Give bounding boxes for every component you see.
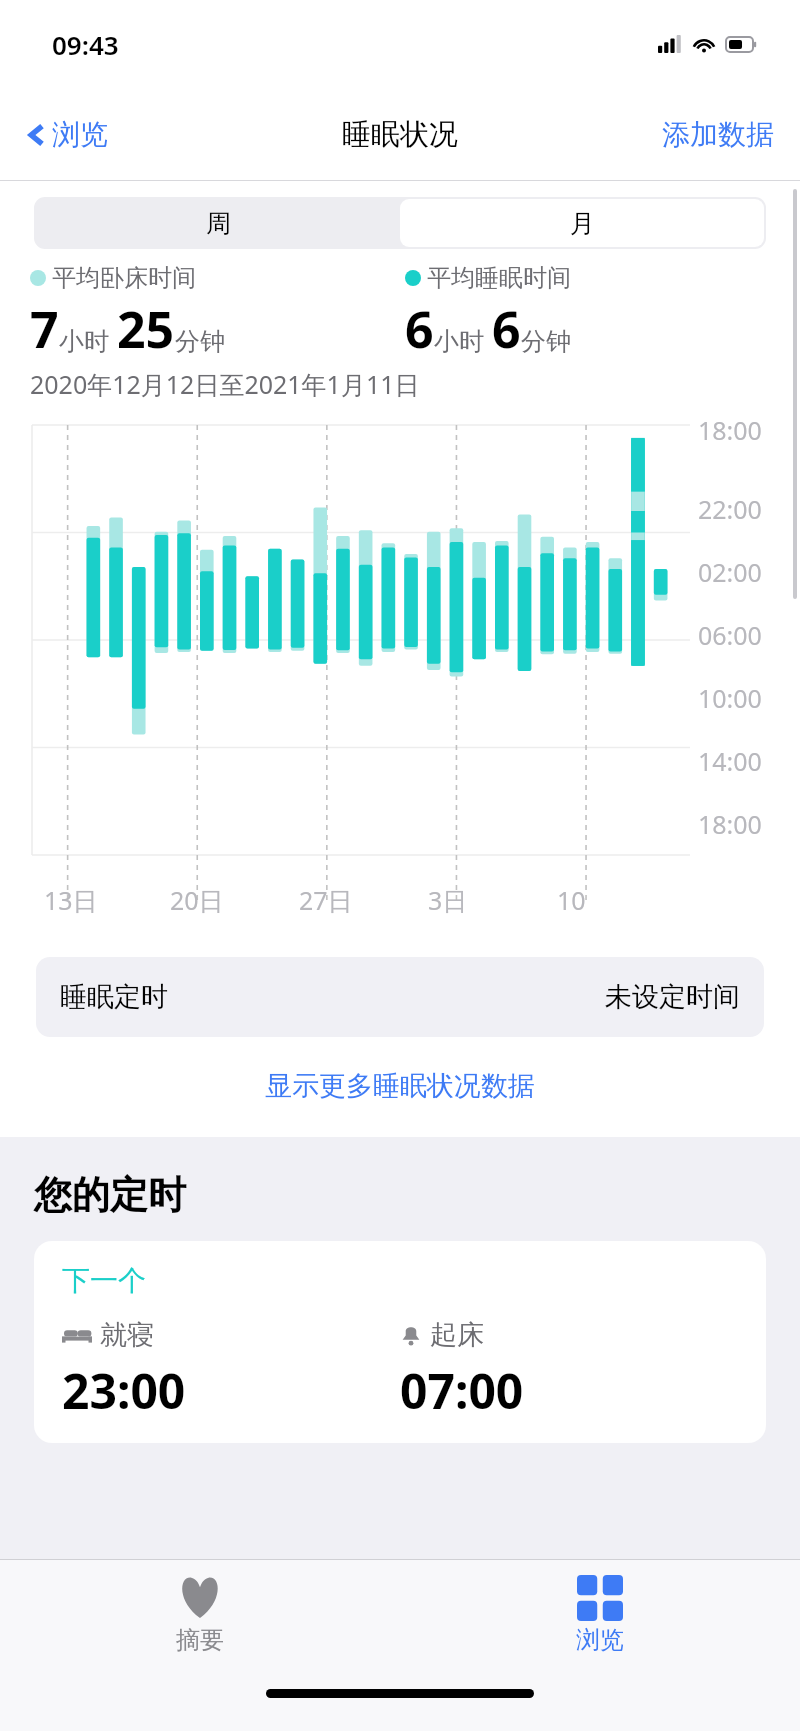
staticText: 下一个 bbox=[62, 1263, 146, 1298]
staticText: 小时 bbox=[434, 326, 484, 357]
staticText: 2020年12月12日至2021年1月11日 bbox=[30, 367, 420, 401]
staticText: 02:00 bbox=[698, 555, 762, 589]
staticText: 10:00 bbox=[698, 681, 762, 715]
button[interactable]: 摘要 bbox=[0, 1560, 400, 1670]
staticText: 小时 bbox=[59, 326, 109, 357]
staticText: 周 bbox=[206, 208, 231, 239]
staticText: 3日 bbox=[428, 883, 468, 917]
staticText: 06:00 bbox=[698, 618, 762, 652]
staticText: 10 bbox=[557, 883, 586, 917]
staticText: 起床 bbox=[430, 1318, 484, 1352]
staticText: 07:00 bbox=[400, 1358, 738, 1423]
staticText: 7 bbox=[30, 295, 59, 363]
staticText: 13日 bbox=[44, 883, 98, 917]
staticText: 未设定时间 bbox=[605, 980, 740, 1014]
staticText: 27日 bbox=[299, 883, 353, 917]
staticText: 6 bbox=[492, 295, 521, 363]
button[interactable]: 睡眠定时 bbox=[36, 957, 764, 1037]
button[interactable]: 添加数据 bbox=[658, 113, 778, 156]
staticText: 分钟 bbox=[521, 326, 571, 357]
staticText: 23:00 bbox=[62, 1358, 400, 1423]
staticText: 25 bbox=[117, 295, 175, 363]
staticText: 月 bbox=[570, 208, 595, 239]
staticText: 6 bbox=[405, 295, 434, 363]
staticText: 18:00 bbox=[698, 807, 762, 841]
staticText: 09:43 bbox=[52, 27, 119, 62]
staticText: 18:00 bbox=[698, 413, 762, 447]
staticText: 平均卧床时间 bbox=[52, 263, 196, 293]
button[interactable]: 浏览 bbox=[20, 109, 114, 160]
staticText: 14:00 bbox=[698, 744, 762, 778]
staticText: 浏览 bbox=[576, 1625, 624, 1655]
staticText: 平均睡眠时间 bbox=[427, 263, 571, 293]
staticText: 您的定时 bbox=[34, 1171, 186, 1219]
staticText: 20日 bbox=[170, 883, 224, 917]
staticText: 分钟 bbox=[175, 326, 225, 357]
button[interactable]: 浏览 bbox=[400, 1560, 800, 1670]
staticText: 摘要 bbox=[176, 1625, 224, 1655]
staticText: 浏览 bbox=[52, 117, 108, 152]
staticText: 睡眠状况 bbox=[342, 116, 458, 153]
staticText: 就寝 bbox=[100, 1318, 154, 1352]
button[interactable]: 显示更多睡眠状况数据 bbox=[259, 1063, 541, 1109]
button[interactable]: 下一个 bbox=[34, 1241, 766, 1443]
button[interactable]: 周 bbox=[36, 199, 400, 247]
staticText: 22:00 bbox=[698, 492, 762, 526]
button[interactable]: 月 bbox=[400, 199, 764, 247]
staticText: 睡眠定时 bbox=[60, 980, 168, 1014]
